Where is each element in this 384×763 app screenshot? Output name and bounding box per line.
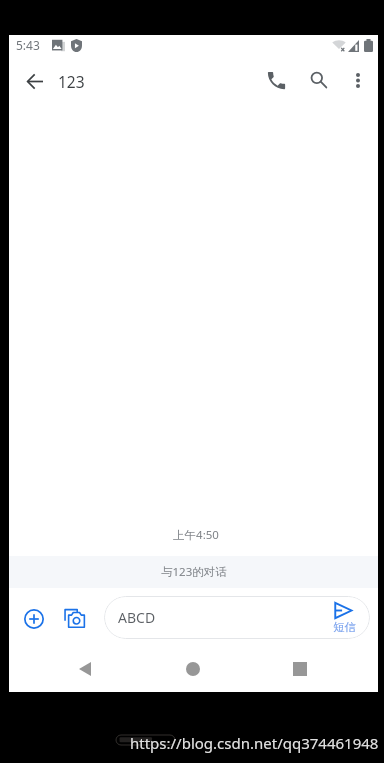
button[interactable]: Add attachment — [14, 599, 54, 639]
button[interactable]: Call — [254, 59, 299, 101]
button[interactable]: Back — [53, 648, 117, 689]
staticText: https://blog.csdn.net/qq374461948 — [130, 733, 379, 753]
staticText: 与123的对话 — [161, 564, 227, 580]
staticText: ABCD — [118, 608, 156, 627]
button[interactable]: More options — [335, 59, 380, 101]
staticText: 上午4:50 — [173, 527, 219, 543]
staticText: 5:43 — [16, 37, 40, 53]
staticText: 123 — [58, 71, 85, 92]
button[interactable]: Send SMS — [320, 596, 364, 638]
button[interactable]: Search — [296, 58, 341, 100]
button[interactable]: Camera — [54, 598, 94, 638]
button[interactable]: Back — [12, 60, 57, 102]
button[interactable]: ABCD — [104, 596, 370, 639]
staticText: 短信 — [333, 620, 356, 634]
button[interactable]: Recents — [268, 648, 332, 689]
button[interactable]: Home — [161, 648, 225, 689]
